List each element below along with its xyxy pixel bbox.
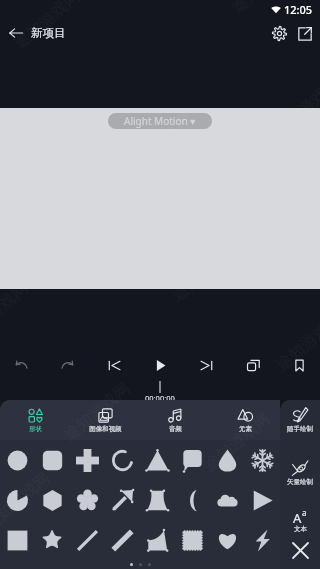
staticText: 12:05 <box>284 2 313 17</box>
button[interactable]: Shape 13 <box>140 480 175 520</box>
button[interactable]: Shape 5 <box>140 440 175 480</box>
staticText: a <box>302 507 307 518</box>
button[interactable]: Shape 14 <box>175 480 210 520</box>
button[interactable]: 音频 <box>140 400 210 440</box>
button[interactable]: 图像和视频 <box>70 400 140 440</box>
button[interactable]: Close <box>283 533 317 567</box>
button[interactable]: Shape 10 <box>35 480 70 520</box>
staticText: 新项目 <box>31 26 66 40</box>
button[interactable]: Shape 21 <box>140 520 175 560</box>
staticText: 矢量绘制 <box>287 478 313 486</box>
button[interactable]: 矢量绘制 <box>280 460 320 486</box>
staticText: 00:00:00 <box>145 393 175 403</box>
button[interactable]: Play <box>147 352 173 378</box>
button[interactable]: Shape 17 <box>0 520 35 560</box>
button[interactable]: Alight Motion ▾ <box>108 113 212 129</box>
button[interactable]: Shape 15 <box>210 480 245 520</box>
staticText: 音频 <box>169 425 182 433</box>
staticText: Alight Motion ▾ <box>124 114 196 128</box>
button[interactable]: Shape 4 <box>105 440 140 480</box>
staticText: A <box>293 509 302 525</box>
button[interactable]: 元素 <box>210 400 280 440</box>
button[interactable]: Shape 22 <box>175 520 210 560</box>
button[interactable]: Undo <box>8 352 34 378</box>
staticText: 随手绘制 <box>287 425 313 433</box>
button[interactable]: Bookmark <box>286 352 312 378</box>
button[interactable]: Shape 7 <box>210 440 245 480</box>
button[interactable]: Shape 8 <box>245 440 280 480</box>
button[interactable]: Settings <box>267 21 292 46</box>
staticText: 形状 <box>29 425 42 433</box>
button[interactable]: Shape 11 <box>70 480 105 520</box>
button[interactable]: Back <box>3 20 29 46</box>
button[interactable]: Shape 2 <box>35 440 70 480</box>
button[interactable]: Redo <box>54 352 80 378</box>
staticText: 元素 <box>239 425 252 433</box>
button[interactable]: Shape 20 <box>105 520 140 560</box>
button[interactable]: 随手绘制 <box>280 407 320 433</box>
button[interactable]: Shape 16 <box>245 480 280 520</box>
button[interactable]: Shape 19 <box>70 520 105 560</box>
staticText: 图像和视频 <box>89 425 122 433</box>
button[interactable]: Shape 9 <box>0 480 35 520</box>
button[interactable]: Shape 18 <box>35 520 70 560</box>
staticText: 文本 <box>294 525 307 533</box>
button[interactable]: Shape 24 <box>245 520 280 560</box>
button[interactable]: Skip to start <box>101 352 127 378</box>
button[interactable]: A <box>280 509 320 533</box>
button[interactable]: Export <box>292 21 317 46</box>
button[interactable]: Shape 6 <box>175 440 210 480</box>
button[interactable]: Loop <box>240 352 266 378</box>
button[interactable]: Skip to end <box>193 352 219 378</box>
button[interactable]: Shape 3 <box>70 440 105 480</box>
button[interactable]: Shape 1 <box>0 440 35 480</box>
button[interactable]: Shape 23 <box>210 520 245 560</box>
button[interactable]: 形状 <box>0 400 70 440</box>
button[interactable]: Shape 12 <box>105 480 140 520</box>
